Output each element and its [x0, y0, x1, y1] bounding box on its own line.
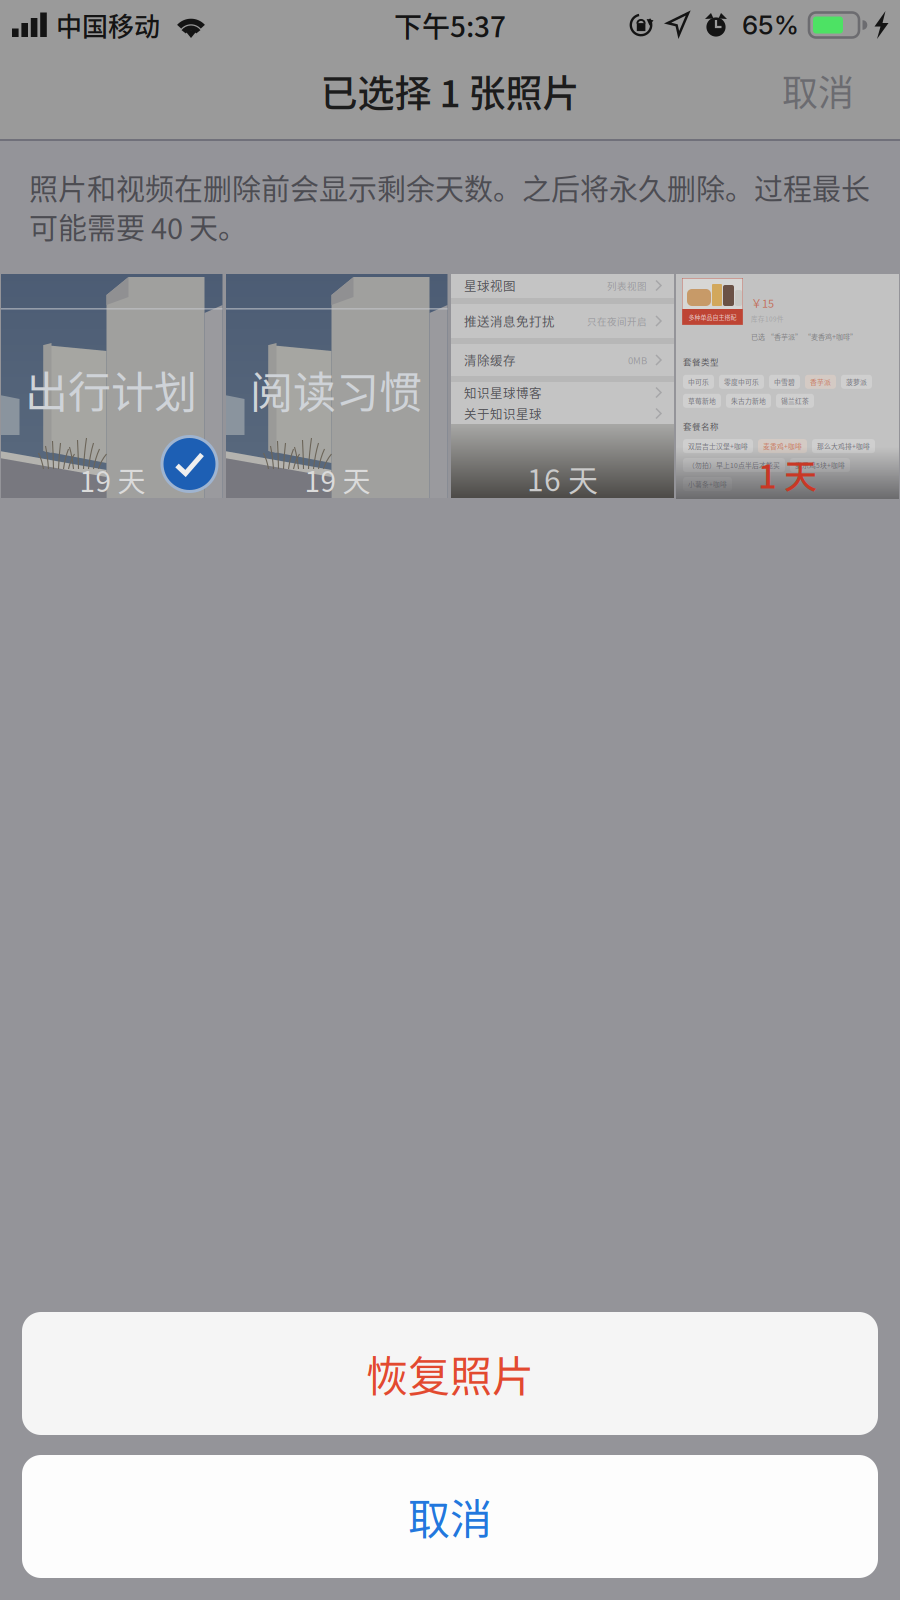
staticText: 恢复照片: [366, 1343, 534, 1404]
staticText: 双层吉士汉堡+咖啡: [688, 441, 748, 451]
staticText: 中国移动: [56, 6, 160, 44]
staticText: 锡兰红茶: [781, 396, 809, 406]
staticText: 只在夜间开启: [587, 314, 647, 328]
staticText: 16 天: [527, 457, 598, 500]
staticText: 星球视图: [464, 276, 516, 295]
staticText: 19 天: [79, 459, 145, 500]
staticText: 推送消息免打扰: [464, 312, 555, 330]
staticText: 65%: [742, 9, 799, 41]
staticText: 朱古力新地: [731, 396, 766, 406]
staticText: 麦乐鸡5块+咖啡: [795, 460, 845, 470]
staticText: 已选择 1 张照片: [320, 64, 579, 118]
staticText: 草莓新地: [688, 396, 716, 406]
button[interactable]: 阅读习惯: [226, 274, 449, 499]
staticText: 那么大鸡排+咖啡: [817, 441, 870, 451]
staticText: 19 天: [304, 459, 370, 500]
staticText: 关于知识星球: [464, 404, 542, 423]
staticText: 出行计划: [25, 358, 197, 421]
button[interactable]: 取消: [758, 48, 900, 140]
staticText: 照片和视频在删除前会显示剩余天数。之后将永久删除。过程最长: [29, 166, 870, 208]
staticText: 多种单品自主搭配: [688, 313, 736, 321]
staticText: 麦香鸡+咖啡: [763, 441, 802, 451]
staticText: 套餐名称: [683, 420, 719, 432]
staticText: 香芋派: [810, 377, 831, 387]
staticText: 已选 “香芋派” “麦香鸡+咖啡”: [751, 331, 857, 341]
staticText: 1 天: [758, 450, 817, 498]
staticText: 0MB: [628, 353, 647, 367]
staticText: 取消: [782, 64, 854, 116]
staticText: 中雪碧: [774, 377, 795, 387]
staticText: （勿拍）早上10点半后才能买: [688, 460, 780, 470]
staticText: 阅读习惯: [250, 358, 422, 421]
staticText: 下午5:37: [394, 5, 506, 45]
staticText: 清除缓存: [464, 351, 516, 369]
staticText: 套餐类型: [683, 355, 719, 368]
button[interactable]: 星球视图: [451, 274, 674, 499]
staticText: 知识星球博客: [464, 383, 542, 402]
staticText: 列表视图: [607, 279, 647, 292]
button[interactable]: 多种单品自主搭配: [676, 274, 899, 499]
button[interactable]: 出行计划: [1, 274, 224, 499]
staticText: 可能需要 40 天。: [29, 205, 247, 247]
button[interactable]: 取消: [22, 1455, 878, 1578]
staticText: 小薯条+咖啡: [688, 479, 727, 489]
staticText: 中可乐: [688, 377, 709, 387]
staticText: 库存109件: [751, 314, 784, 323]
staticText: 取消: [408, 1486, 492, 1547]
staticText: ￥15: [751, 295, 774, 311]
button[interactable]: 恢复照片: [22, 1312, 878, 1435]
staticText: 零度中可乐: [724, 377, 759, 387]
staticText: 菠萝派: [846, 377, 867, 387]
